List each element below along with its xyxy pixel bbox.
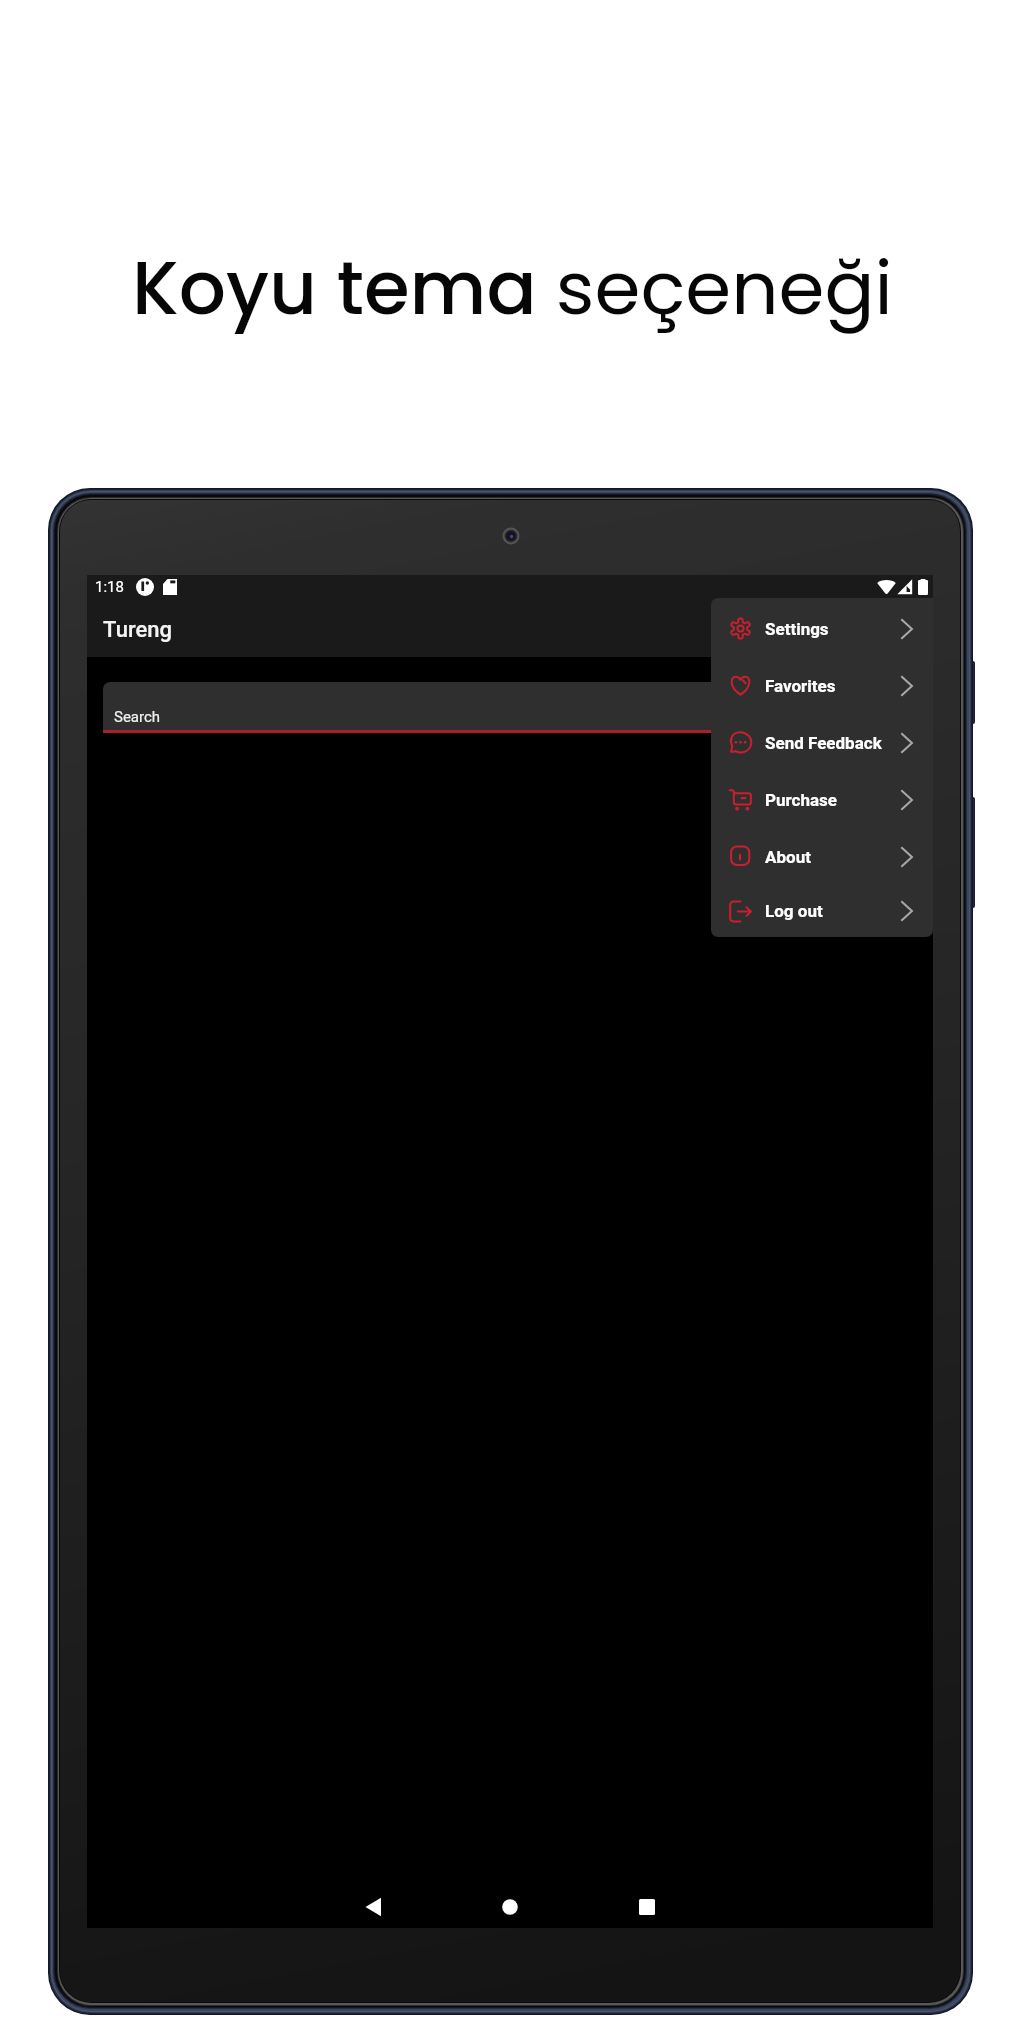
staticText: Purchase <box>765 790 837 810</box>
button[interactable]: About <box>711 828 933 885</box>
button[interactable]: Home <box>478 1886 542 1928</box>
staticText: Tureng <box>103 617 172 643</box>
staticText: Log out <box>765 901 823 921</box>
button[interactable]: Send Feedback <box>711 714 933 771</box>
button[interactable]: Purchase <box>711 771 933 828</box>
button[interactable]: Settings <box>711 600 933 657</box>
button[interactable]: Back <box>342 1886 406 1928</box>
staticText: Koyu tema seçeneği <box>132 236 893 340</box>
staticText: Search <box>114 708 161 726</box>
staticText: Favorites <box>765 676 836 696</box>
button[interactable]: Tureng <box>87 603 933 657</box>
staticText: Send Feedback <box>765 733 882 753</box>
staticText: 1:18 <box>95 578 124 596</box>
button[interactable]: Recent apps <box>615 1886 679 1928</box>
button[interactable]: Search <box>103 682 917 733</box>
staticText: About <box>765 847 811 867</box>
button[interactable]: Log out <box>711 885 933 937</box>
button[interactable]: Favorites <box>711 657 933 714</box>
staticText: Settings <box>765 619 829 639</box>
